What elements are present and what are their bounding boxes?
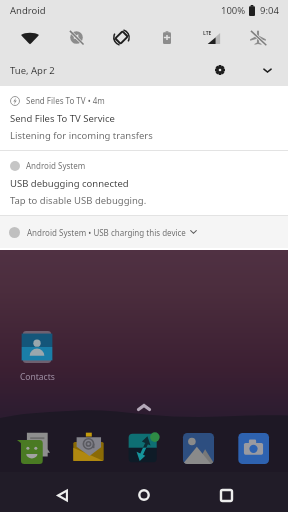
button[interactable]: Do not disturb [57,21,95,54]
staticText: Android [10,4,46,17]
staticText: Tap to disable USB debugging. [10,194,147,207]
button[interactable]: Back [42,478,82,512]
staticText: Android System • USB charging this devic… [27,227,186,238]
button[interactable]: Camera [237,432,270,465]
staticText: Send Files To TV • 4m [26,95,105,106]
button[interactable]: Messaging [17,432,50,465]
button[interactable]: All apps [133,396,155,418]
staticText: LTE [203,30,212,37]
button[interactable]: Airplane mode [239,21,277,54]
button[interactable]: Send Files To TV • 4m [0,86,288,150]
button[interactable]: Expand [254,57,280,83]
staticText: USB debugging connected [10,177,129,190]
button[interactable]: Mobile data [193,21,231,54]
button[interactable]: Settings [207,57,233,83]
staticText: 100% [221,4,246,17]
button[interactable]: Email [72,432,105,465]
button[interactable]: Auto rotate [102,21,140,54]
button[interactable]: Photos [182,432,215,465]
staticText: Listening for incoming transfers [10,129,153,142]
staticText: Contacts [20,371,55,383]
button[interactable]: Recents [206,478,246,512]
button[interactable]: Battery saver [148,21,186,54]
staticText: Send Files To TV Service [10,112,115,125]
staticText: Android System [26,160,86,171]
staticText: 9:04 [260,4,279,17]
button[interactable]: Android System [0,151,288,215]
staticText: Tue, Apr 2 [10,64,55,77]
button[interactable]: Android System • USB charging this devic… [9,216,278,248]
button[interactable]: Contacts [7,331,67,383]
button[interactable]: Send Files To TV [127,432,160,465]
button[interactable]: Wi-Fi [11,21,49,54]
button[interactable]: Home [124,478,164,512]
